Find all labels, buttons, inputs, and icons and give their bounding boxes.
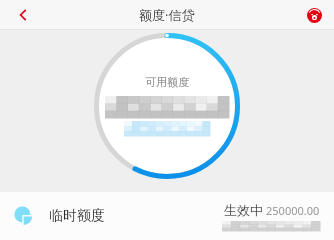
button[interactable]: 临时额度 bbox=[0, 192, 334, 240]
staticText: 250000.00 bbox=[266, 203, 320, 218]
staticText: 额度·信贷 bbox=[139, 6, 195, 24]
button[interactable]: Back bbox=[0, 0, 46, 30]
button[interactable]: Customer service bbox=[294, 0, 334, 30]
staticText: 生效中 bbox=[224, 202, 263, 218]
staticText: 临时额度 bbox=[49, 207, 105, 225]
staticText: 可用额度 bbox=[145, 75, 189, 89]
